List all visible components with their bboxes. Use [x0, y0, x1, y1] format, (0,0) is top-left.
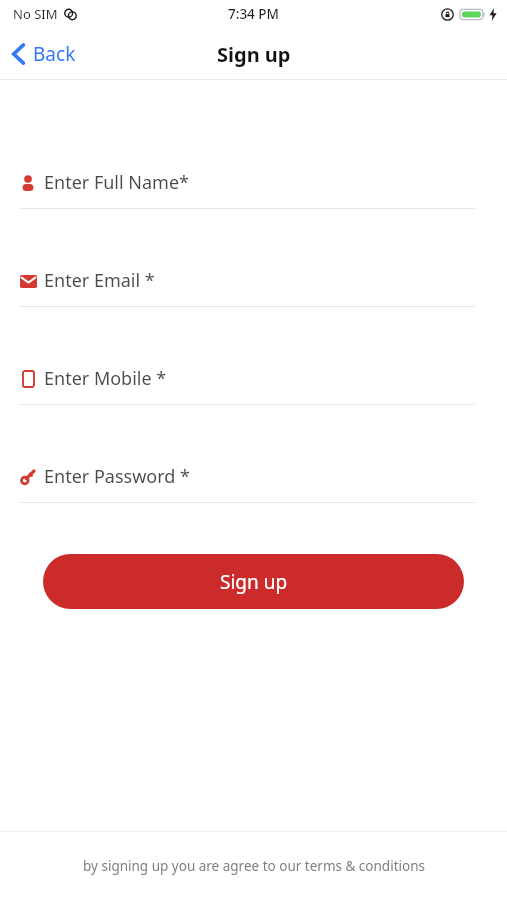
button[interactable]: Back — [0, 35, 88, 73]
staticText: Enter Password * — [44, 464, 190, 489]
staticText: Back — [33, 41, 76, 67]
staticText: 7:34 PM — [228, 5, 279, 23]
staticText: No SIM — [13, 5, 58, 23]
staticText: Enter Full Name* — [44, 170, 190, 195]
button[interactable]: Enter Mobile * — [0, 366, 507, 405]
staticText: Sign up — [220, 569, 288, 595]
staticText: Sign up — [217, 41, 291, 68]
button[interactable]: Enter Full Name* — [0, 170, 507, 209]
staticText: Enter Email * — [44, 268, 155, 293]
button[interactable]: Enter Email * — [0, 268, 507, 307]
staticText: Enter Mobile * — [44, 366, 167, 391]
button[interactable]: Sign up — [43, 554, 464, 609]
button[interactable]: Enter Password * — [0, 464, 507, 503]
staticText: by signing up you are agree to our terms… — [83, 857, 425, 875]
